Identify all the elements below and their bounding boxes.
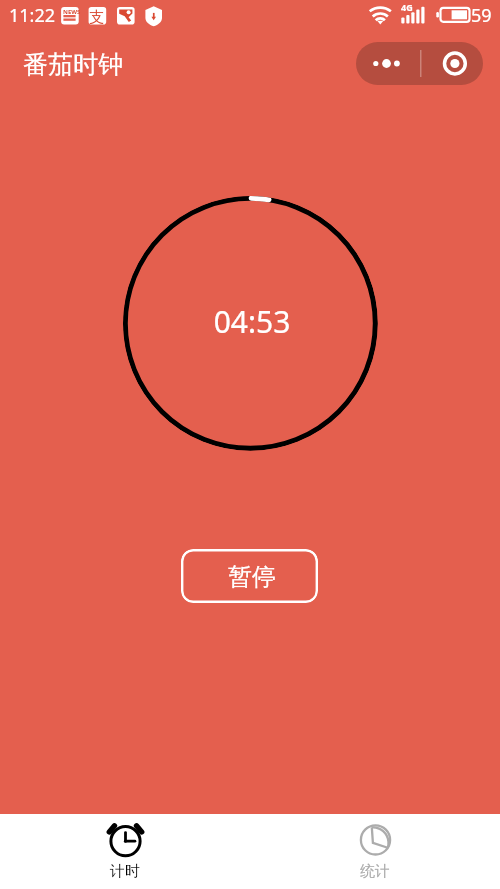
staticText: 支 (89, 8, 104, 27)
button[interactable]: 暂停 (181, 549, 318, 603)
staticText: 计时 (110, 862, 140, 881)
button[interactable]: 统计 (250, 814, 500, 889)
staticText: 04:53 (2, 301, 500, 342)
staticText: NEWS (63, 8, 81, 16)
button[interactable]: More options (356, 42, 420, 85)
button[interactable]: 计时 (0, 814, 250, 889)
staticText: 暂停 (228, 562, 276, 592)
button[interactable]: Countdown ring, 04:53 remaining (123, 196, 378, 451)
staticText: 统计 (360, 862, 390, 881)
button[interactable]: Start focus session (420, 42, 483, 85)
staticText: 59 (471, 3, 492, 28)
staticText: 4G (401, 1, 413, 13)
staticText: 11:22 (9, 3, 56, 28)
staticText: 番茄时钟 (23, 49, 123, 80)
